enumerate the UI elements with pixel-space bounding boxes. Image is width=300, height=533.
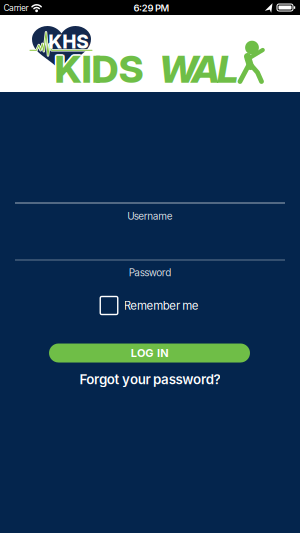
staticText: WAL xyxy=(159,46,238,92)
staticText: Remember me xyxy=(124,299,199,312)
button[interactable]: Remember me xyxy=(100,296,199,314)
staticText: KIDS xyxy=(54,48,143,94)
staticText: KHS xyxy=(48,30,89,53)
staticText: KIDS xyxy=(54,44,143,90)
staticText: Username xyxy=(127,210,173,222)
staticText: KIDS xyxy=(54,46,143,92)
staticText: Forgot your password? xyxy=(79,371,220,387)
staticText: KIDS xyxy=(53,45,142,91)
staticText: KIDS xyxy=(56,46,145,92)
staticText: KIDS xyxy=(56,47,145,93)
staticText: Password xyxy=(129,266,171,279)
button[interactable]: LOG IN xyxy=(49,343,250,362)
staticText: LOG IN xyxy=(131,346,168,360)
staticText: Carrier xyxy=(3,3,29,13)
staticText: KIDS xyxy=(53,46,142,92)
staticText: 6:29 PM xyxy=(133,2,170,14)
staticText: KIDS xyxy=(56,45,145,91)
button[interactable]: Forgot your password? xyxy=(79,371,220,387)
staticText: KIDS xyxy=(53,47,142,93)
